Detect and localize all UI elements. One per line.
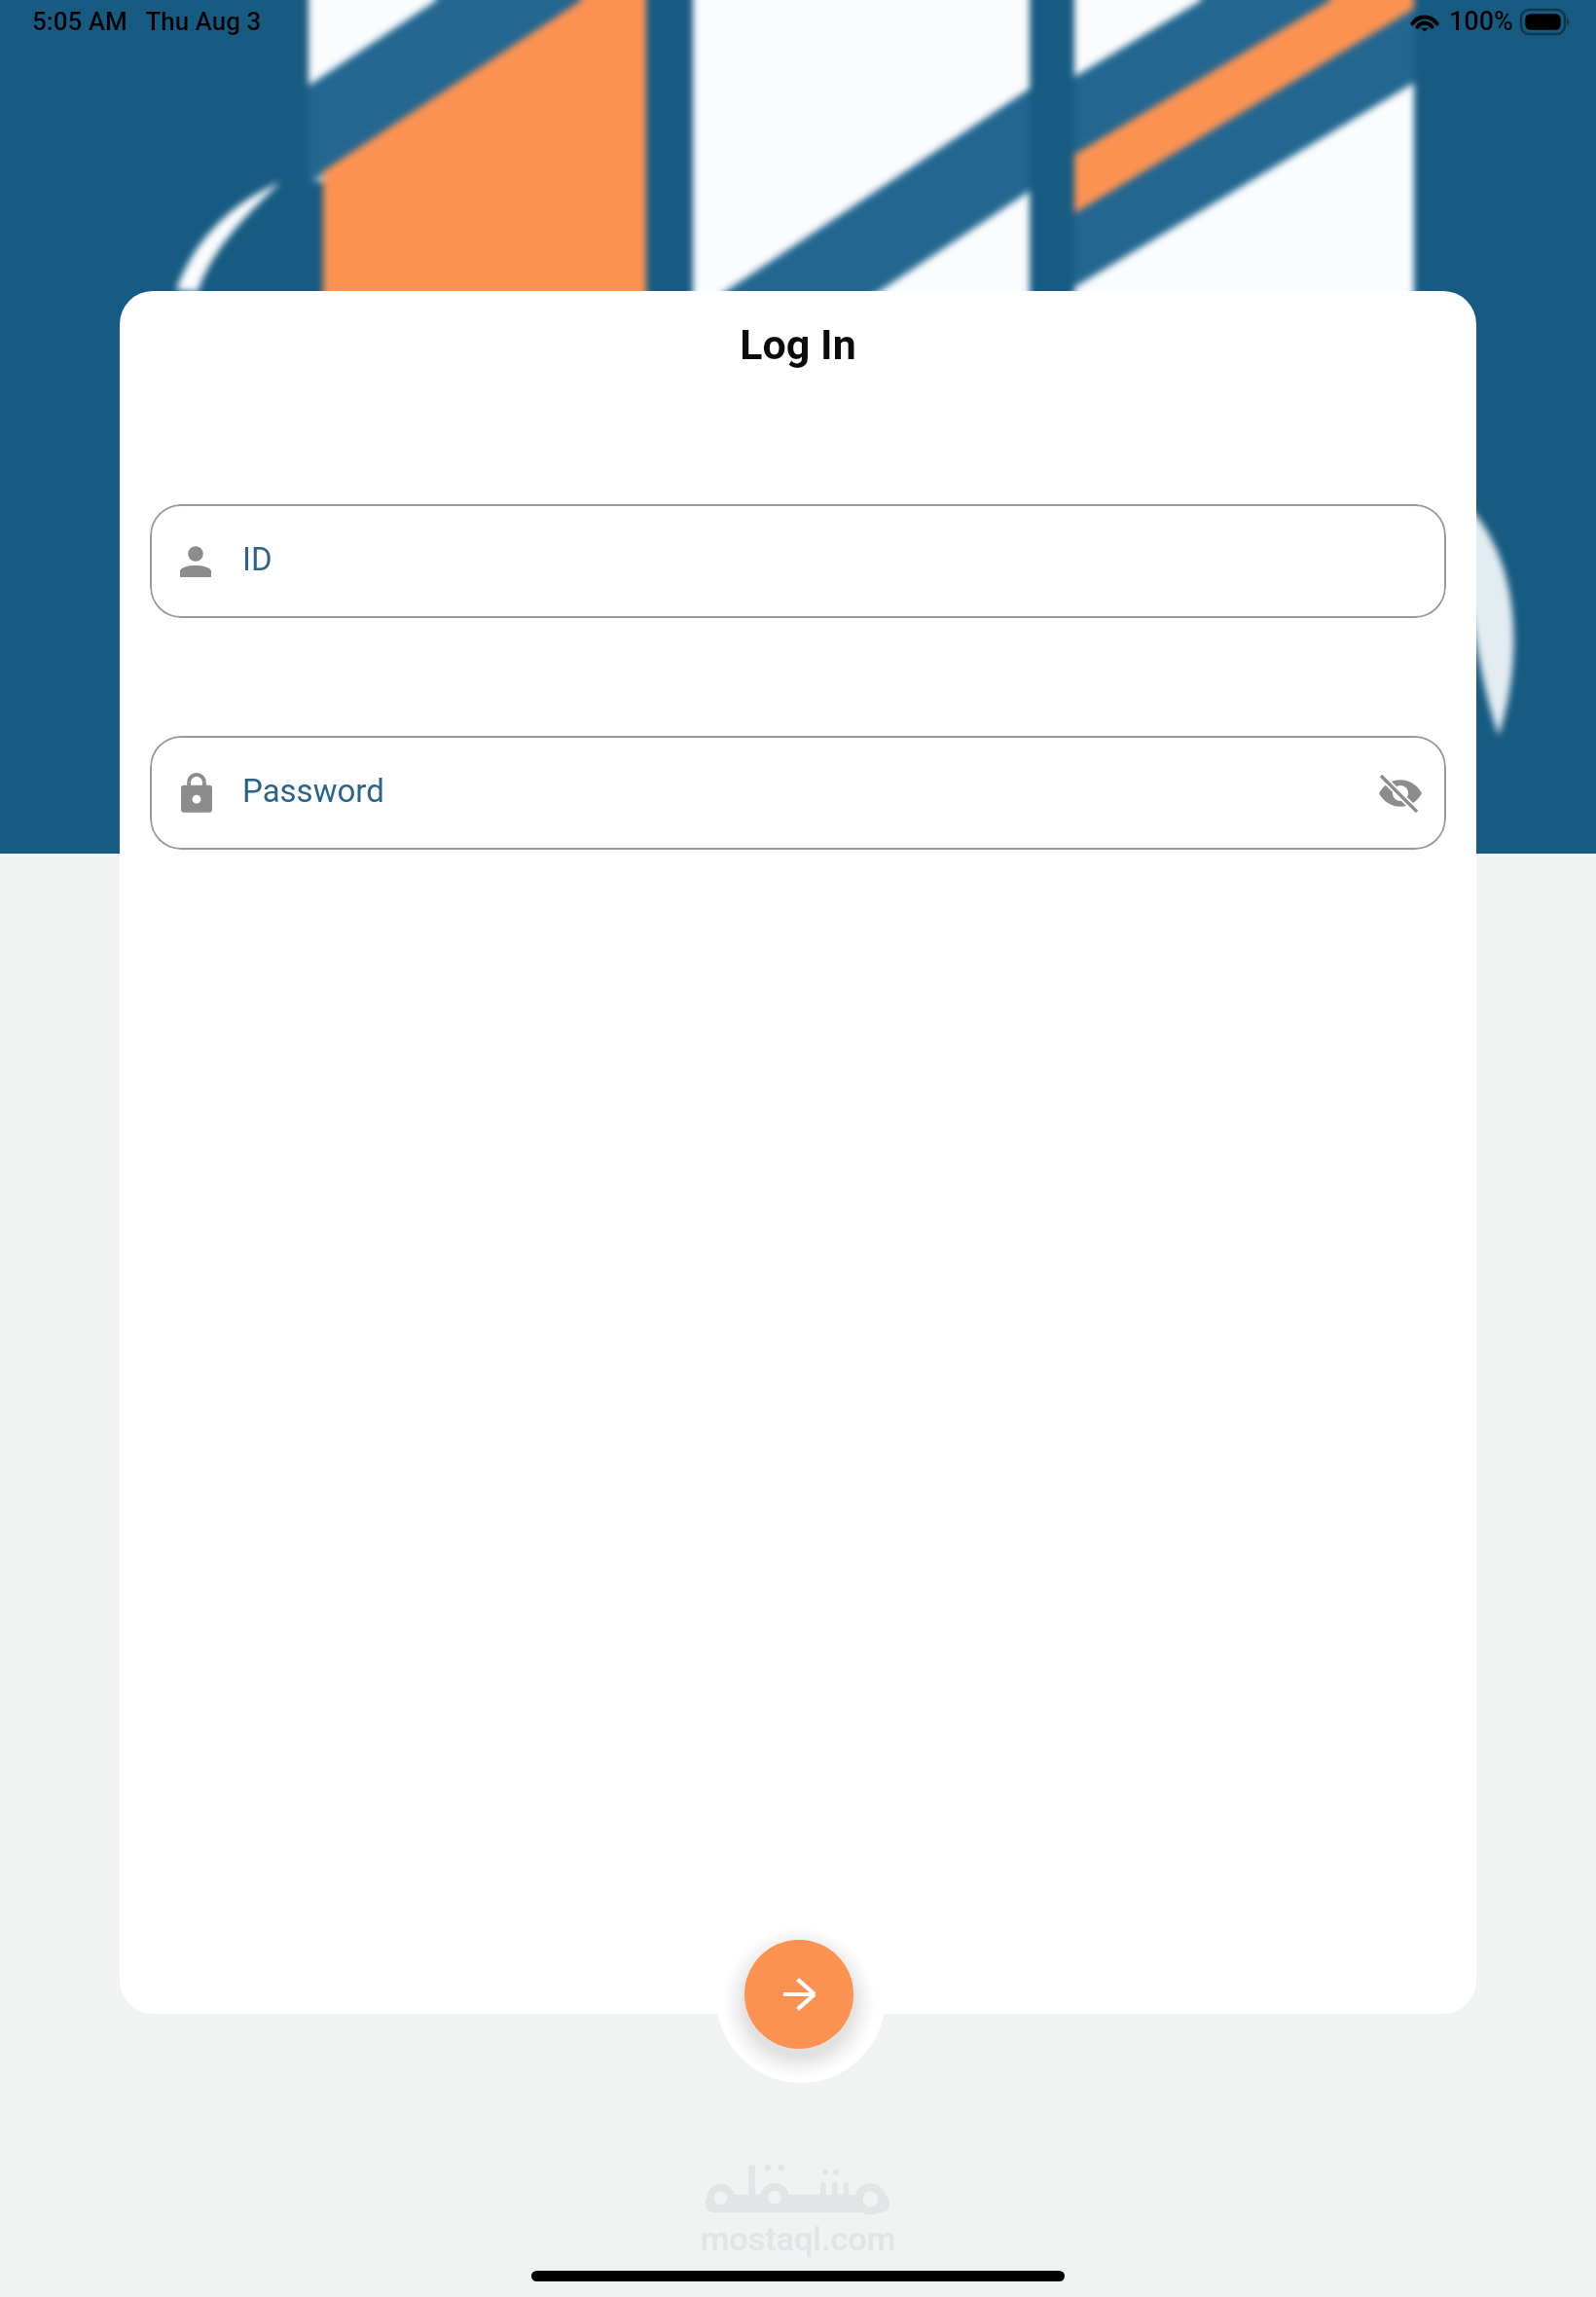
staticText: ID [242, 540, 272, 578]
button[interactable]: Continue [744, 1940, 853, 2049]
button[interactable]: ID [150, 504, 1446, 618]
staticText: 5:05 AM Thu Aug 3 [32, 7, 262, 36]
staticText: mostaql.com [699, 2219, 897, 2258]
staticText: 100% [1449, 6, 1513, 37]
button[interactable]: Password [150, 736, 1446, 850]
button[interactable]: Show password [1369, 762, 1432, 824]
staticText: Log In [120, 320, 1476, 369]
staticText: Password [242, 772, 384, 810]
